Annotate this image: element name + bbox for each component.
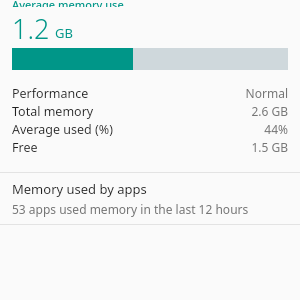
- staticText: Average used (%): [12, 121, 113, 138]
- staticText: Normal: [245, 85, 288, 101]
- staticText: Memory used by apps: [12, 180, 147, 198]
- button[interactable]: Performance: [0, 84, 300, 102]
- staticText: Free: [12, 139, 38, 156]
- staticText: 2.6 GB: [251, 103, 288, 119]
- button[interactable]: Average used (%): [0, 120, 300, 138]
- staticText: Average memory use: [12, 0, 124, 7]
- staticText: Performance: [12, 85, 89, 102]
- staticText: 44%: [264, 121, 288, 137]
- staticText: GB: [55, 24, 73, 42]
- staticText: 53 apps used memory in the last 12 hours: [12, 201, 249, 217]
- staticText: 1.2: [12, 10, 50, 46]
- staticText: Total memory: [12, 103, 94, 120]
- button[interactable]: Total memory: [0, 102, 300, 120]
- button[interactable]: Free: [0, 138, 300, 156]
- staticText: 1.5 GB: [251, 139, 288, 155]
- button[interactable]: Memory used by apps: [0, 173, 300, 224]
